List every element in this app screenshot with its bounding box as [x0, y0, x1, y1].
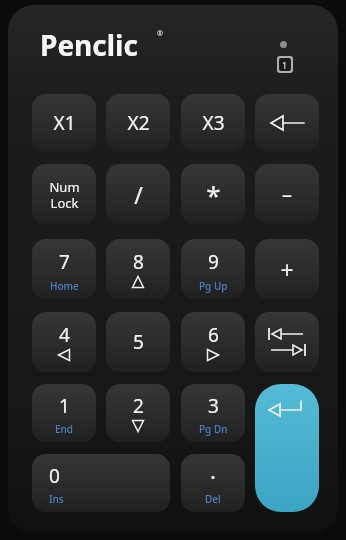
staticText: +	[280, 254, 294, 285]
staticText: Penclic	[40, 26, 138, 64]
button[interactable]: 1	[32, 384, 96, 442]
button[interactable]: 9	[181, 239, 245, 299]
staticText: 1	[59, 393, 70, 419]
staticText: Del	[205, 492, 221, 506]
staticText: 2	[133, 393, 144, 419]
button[interactable]: X1	[32, 94, 96, 152]
staticText: 8	[133, 249, 144, 275]
button[interactable]: ·	[181, 454, 245, 512]
staticText: Pg Dn	[199, 422, 228, 436]
staticText: 3	[208, 393, 219, 419]
staticText: 9	[208, 249, 219, 275]
staticText: X2	[127, 110, 150, 136]
staticText: Ins	[49, 492, 64, 506]
staticText: /	[134, 179, 143, 210]
button[interactable]: 8	[106, 239, 170, 299]
staticText: X1	[53, 110, 76, 136]
button[interactable]: 5	[106, 312, 170, 372]
button[interactable]: +	[255, 239, 319, 299]
button[interactable]: 2	[106, 384, 170, 442]
staticText: 4	[59, 322, 70, 348]
button[interactable]: Num Lock	[32, 164, 96, 224]
staticText: Num Lock	[49, 178, 80, 211]
button[interactable]: 0	[32, 454, 170, 512]
button[interactable]: 6	[181, 312, 245, 372]
button[interactable]: Backspace	[255, 94, 319, 152]
staticText: ·	[210, 461, 216, 491]
staticText: Home	[50, 279, 79, 293]
button[interactable]: Enter	[255, 384, 319, 512]
staticText: *	[206, 177, 221, 212]
staticText: Pg Up	[199, 279, 228, 293]
button[interactable]: *	[181, 164, 245, 224]
staticText: 5	[133, 329, 144, 355]
button[interactable]: Tab	[255, 312, 319, 372]
staticText: X3	[202, 110, 225, 136]
staticText: –	[282, 181, 292, 208]
staticText: End	[55, 422, 74, 436]
staticText: 7	[59, 249, 70, 275]
button[interactable]: X2	[106, 94, 170, 152]
button[interactable]: –	[255, 164, 319, 224]
button[interactable]: 4	[32, 312, 96, 372]
staticText: 0	[49, 463, 60, 489]
staticText: ®	[157, 29, 163, 39]
button[interactable]: 7	[32, 239, 96, 299]
button[interactable]: X3	[181, 94, 245, 152]
button[interactable]: Penclic	[40, 26, 138, 64]
button[interactable]: /	[106, 164, 170, 224]
staticText: 6	[208, 322, 219, 348]
button[interactable]: 3	[181, 384, 245, 442]
staticText: 1	[282, 59, 288, 71]
